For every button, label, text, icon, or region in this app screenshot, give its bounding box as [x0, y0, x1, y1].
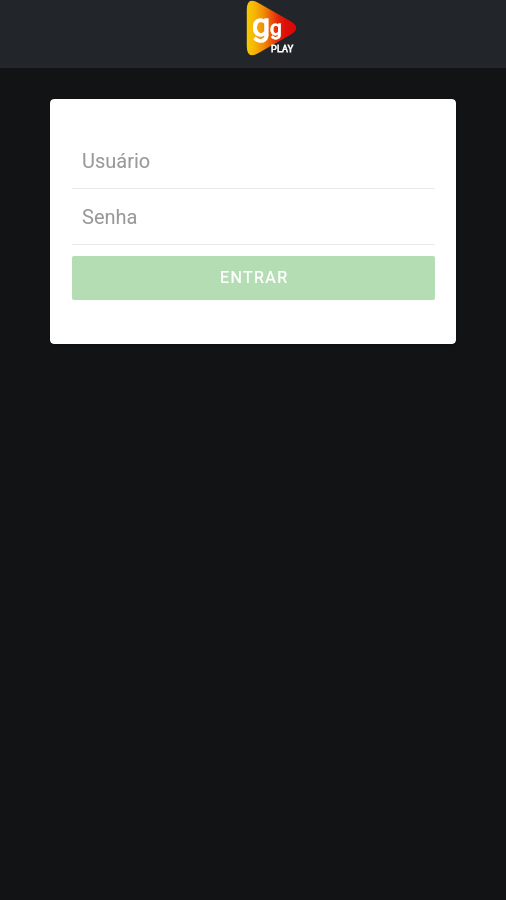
staticText: PLAY	[271, 44, 294, 55]
button[interactable]: Senha	[72, 211, 435, 245]
button[interactable]: ENTRAR	[72, 256, 435, 300]
button[interactable]: Usuário	[72, 155, 435, 189]
staticText: g	[252, 6, 270, 44]
staticText: Usuário	[82, 149, 151, 172]
staticText: ENTRAR	[220, 268, 289, 287]
staticText: g	[270, 16, 282, 41]
other: gg PLAY logo	[246, 0, 296, 56]
staticText: Senha	[82, 205, 138, 228]
